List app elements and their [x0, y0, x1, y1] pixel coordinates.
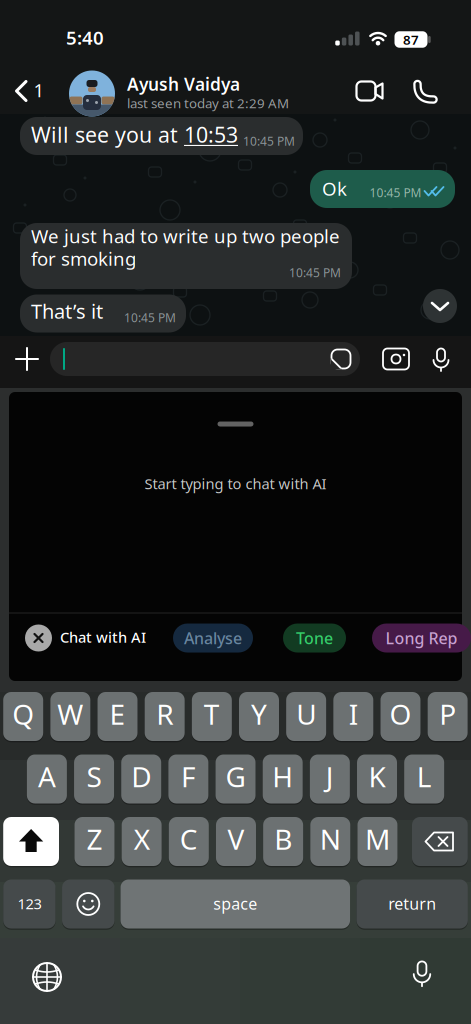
- staticText: C: [180, 820, 198, 858]
- staticText: O: [389, 695, 411, 733]
- button[interactable]: Voice call: [0, 0, 471, 1024]
- staticText: S: [87, 758, 102, 795]
- staticText: Will see you at: [31, 120, 184, 149]
- staticText: Ok: [322, 176, 347, 201]
- staticText: K: [368, 758, 385, 795]
- staticText: Start typing to chat with AI: [144, 474, 326, 493]
- button[interactable]: Y: [0, 0, 471, 1024]
- button[interactable]: Q: [0, 0, 471, 1024]
- staticText: M: [365, 820, 390, 858]
- staticText: E: [109, 695, 125, 733]
- button[interactable]: K: [0, 0, 471, 1024]
- staticText: return: [388, 893, 436, 914]
- staticText: N: [320, 820, 341, 858]
- button[interactable]: H: [0, 0, 471, 1024]
- staticText: B: [274, 820, 292, 858]
- staticText: Analyse: [184, 627, 242, 649]
- button[interactable]: V: [0, 0, 471, 1024]
- staticText: 87: [403, 31, 419, 48]
- staticText: 10:45 PM: [289, 264, 341, 280]
- staticText: Long Rep: [385, 627, 457, 649]
- staticText: D: [131, 758, 151, 795]
- button[interactable]: Z: [0, 0, 471, 1024]
- button[interactable]: I: [0, 0, 471, 1024]
- button[interactable]: Back: [0, 0, 471, 1024]
- button[interactable]: O: [0, 0, 471, 1024]
- button[interactable]: Close chat with AI: [0, 0, 471, 1024]
- staticText: Ayush Vaidya: [127, 72, 240, 95]
- button[interactable]: G: [0, 0, 471, 1024]
- button[interactable]: space: [0, 0, 471, 1024]
- staticText: V: [227, 820, 244, 858]
- staticText: 10:53: [184, 120, 238, 149]
- button[interactable]: T: [0, 0, 471, 1024]
- button[interactable]: Tone: [0, 0, 471, 1024]
- staticText: Chat with AI: [60, 627, 146, 647]
- button[interactable]: P: [0, 0, 471, 1024]
- button[interactable]: Next keyboard: [0, 0, 471, 1024]
- button[interactable]: Attach: [0, 0, 471, 1024]
- button[interactable]: W: [0, 0, 471, 1024]
- staticText: That’s it: [31, 298, 103, 324]
- button[interactable]: Message: [0, 0, 471, 1024]
- staticText: 10:45 PM: [124, 309, 176, 325]
- button[interactable]: F: [0, 0, 471, 1024]
- button[interactable]: J: [0, 0, 471, 1024]
- staticText: R: [156, 695, 173, 733]
- button[interactable]: return: [0, 0, 471, 1024]
- staticText: I: [349, 695, 358, 733]
- button[interactable]: C: [0, 0, 471, 1024]
- staticText: X: [134, 820, 150, 858]
- button[interactable]: A: [0, 0, 471, 1024]
- staticText: last seen today at 2:29 AM: [127, 94, 289, 112]
- staticText: Y: [251, 695, 267, 733]
- button[interactable]: Record voice message: [0, 0, 471, 1024]
- button[interactable]: S: [0, 0, 471, 1024]
- button[interactable]: Shift: [0, 0, 471, 1024]
- button[interactable]: Chat with AI: [0, 0, 471, 1024]
- button[interactable]: L: [0, 0, 471, 1024]
- button[interactable]: Profile: [0, 0, 471, 1024]
- staticText: T: [204, 695, 220, 733]
- staticText: G: [225, 758, 245, 795]
- staticText: 123: [17, 894, 41, 913]
- button[interactable]: Emoji: [0, 0, 471, 1024]
- staticText: Tone: [296, 627, 333, 649]
- staticText: F: [181, 758, 196, 795]
- staticText: U: [296, 695, 316, 733]
- staticText: L: [417, 758, 432, 795]
- staticText: Z: [86, 820, 102, 858]
- button[interactable]: X: [0, 0, 471, 1024]
- staticText: P: [439, 695, 456, 733]
- button[interactable]: B: [0, 0, 471, 1024]
- button[interactable]: Analyse: [0, 0, 471, 1024]
- button[interactable]: Delete: [0, 0, 471, 1024]
- staticText: H: [272, 758, 293, 795]
- button[interactable]: Ayush Vaidya: [0, 0, 471, 114]
- button[interactable]: M: [0, 0, 471, 1024]
- button[interactable]: Scroll to bottom: [0, 0, 471, 1024]
- staticText: 1: [33, 78, 44, 102]
- button[interactable]: N: [0, 0, 471, 1024]
- button[interactable]: Camera: [0, 0, 471, 1024]
- staticText: We just had to write up two people: [31, 224, 340, 248]
- button[interactable]: Video call: [0, 0, 471, 1024]
- button[interactable]: Dictation: [0, 0, 471, 1024]
- staticText: for smoking: [31, 246, 136, 271]
- button[interactable]: Stickers: [0, 0, 471, 1024]
- staticText: 5:40: [66, 25, 104, 50]
- staticText: 10:45 PM: [243, 133, 295, 149]
- staticText: 10:45 PM: [369, 184, 421, 200]
- staticText: space: [213, 893, 257, 914]
- button[interactable]: Long Rep: [0, 0, 471, 1024]
- staticText: Q: [12, 695, 34, 733]
- button[interactable]: E: [0, 0, 471, 1024]
- staticText: J: [326, 758, 334, 795]
- staticText: W: [57, 695, 83, 733]
- button[interactable]: D: [0, 0, 471, 1024]
- button[interactable]: R: [0, 0, 471, 1024]
- button[interactable]: 123: [0, 0, 471, 1024]
- staticText: A: [38, 758, 56, 795]
- button[interactable]: U: [0, 0, 471, 1024]
